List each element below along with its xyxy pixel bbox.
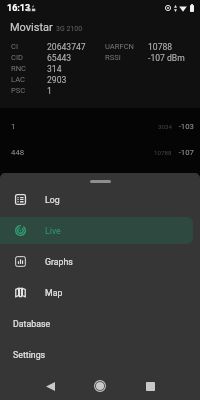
staticText: 314 (47, 64, 62, 74)
staticText: PSC (11, 86, 26, 95)
button[interactable]: Graphs (0, 248, 193, 275)
staticText: -103 (176, 122, 194, 131)
staticText: Map (45, 288, 63, 298)
button[interactable]: Log (0, 186, 193, 213)
staticText: 16:13 (7, 3, 31, 14)
staticText: 448 (11, 148, 25, 157)
button[interactable]: Database (0, 310, 193, 337)
button[interactable]: Home (88, 374, 112, 398)
staticText: CID (11, 53, 23, 62)
staticText: -107 (176, 148, 194, 157)
button[interactable]: Map (0, 279, 193, 306)
button[interactable]: 448 (0, 139, 200, 165)
staticText: RNC (11, 64, 27, 73)
staticText: 2903 (47, 75, 67, 85)
staticText: Movistar (10, 21, 53, 34)
staticText: 10788 (148, 42, 173, 52)
staticText: CI (11, 42, 19, 51)
staticText: 3G 2100 (56, 25, 83, 33)
button[interactable]: Settings (0, 341, 193, 368)
button[interactable]: Recent apps (138, 374, 162, 398)
staticText: RSSI (105, 53, 121, 62)
staticText: 1 (47, 86, 52, 96)
staticText: 65443 (47, 53, 72, 63)
staticText: LAC (11, 75, 26, 84)
button[interactable]: 1 (0, 113, 200, 139)
staticText: 1 (11, 122, 16, 131)
button[interactable]: Live (0, 217, 193, 244)
staticText: 3034 (158, 123, 172, 130)
staticText: 10788 (154, 149, 172, 156)
button[interactable]: Back (38, 374, 62, 398)
staticText: -107 dBm (148, 53, 185, 63)
staticText: Graphs (45, 257, 73, 267)
staticText: Log (45, 195, 60, 205)
staticText: UARFCN (105, 42, 135, 51)
staticText: Settings (13, 350, 46, 360)
staticText: Database (13, 319, 51, 329)
staticText: Live (45, 226, 61, 236)
staticText: 20643747 (47, 42, 86, 52)
